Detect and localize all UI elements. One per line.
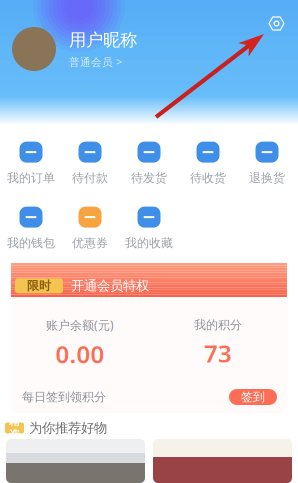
staticText: 为你推荐好物 <box>29 420 107 436</box>
button[interactable]: 待收货 <box>178 139 237 187</box>
button[interactable]: 退换货 <box>237 139 296 187</box>
staticText: 待付款 <box>72 171 108 185</box>
button[interactable]: 精选 <box>0 417 298 439</box>
staticText: 待收货 <box>190 171 226 185</box>
button[interactable]: 签到 <box>229 389 277 405</box>
button[interactable]: 优惠券 <box>60 204 119 252</box>
button[interactable]: 我的钱包 <box>1 204 60 252</box>
staticText: 退换货 <box>249 171 285 185</box>
button[interactable]: 我的积分 <box>149 318 287 369</box>
button[interactable] <box>153 439 292 483</box>
staticText: 用户昵称 <box>69 29 137 51</box>
staticText: 优惠券 <box>72 236 108 250</box>
staticText: 账户余额(元) <box>46 317 114 333</box>
button[interactable]: 用户昵称 <box>0 27 298 71</box>
staticText: 签到 <box>241 390 265 404</box>
staticText: 我的积分 <box>194 318 242 332</box>
staticText: 待发货 <box>131 171 167 185</box>
staticText: 限时 <box>27 278 51 293</box>
staticText: 我的钱包 <box>7 236 55 250</box>
staticText: 0.00 <box>55 338 104 370</box>
button[interactable]: 我的收藏 <box>119 204 178 252</box>
button[interactable] <box>6 439 145 483</box>
staticText: 开通会员特权 <box>71 278 149 294</box>
button[interactable]: 我的订单 <box>1 139 60 187</box>
button[interactable]: Settings <box>264 11 289 36</box>
staticText: 每日签到领积分 <box>22 390 106 404</box>
staticText: 普通会员 > <box>69 55 122 69</box>
staticText: 73 <box>204 337 232 369</box>
button[interactable]: 账户余额(元) <box>11 317 149 370</box>
staticText: 我的收藏 <box>125 236 173 250</box>
button[interactable]: 待发货 <box>119 139 178 187</box>
staticText: 精选 <box>9 415 20 441</box>
button[interactable]: 待付款 <box>60 139 119 187</box>
staticText: 我的订单 <box>7 171 55 185</box>
button[interactable]: 限时 <box>11 263 287 297</box>
